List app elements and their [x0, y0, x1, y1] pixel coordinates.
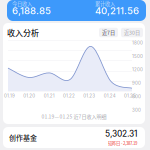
- staticText: 较昨日 -2,387.19: [108, 140, 137, 146]
- staticText: 1200: [132, 67, 143, 72]
- staticText: 5,302.31: [105, 129, 137, 139]
- staticText: 01.19—01.25 近7日收入明细: [41, 113, 106, 120]
- staticText: 01.20: [23, 93, 35, 98]
- staticText: 01.19: [4, 93, 15, 98]
- staticText: 近7日: [102, 29, 115, 36]
- staticText: 今日收入: [12, 0, 32, 7]
- staticText: 01.22: [63, 93, 75, 98]
- staticText: 01.23: [83, 93, 95, 98]
- staticText: 1800: [132, 40, 143, 45]
- staticText: 01.25: [124, 93, 136, 98]
- staticText: 近30日: [124, 29, 140, 36]
- staticText: 40,211.56: [95, 5, 139, 17]
- button[interactable]: 近7日: [99, 28, 118, 37]
- staticText: 收入分析: [7, 27, 39, 38]
- button[interactable]: 创作基金: [3, 127, 145, 148]
- staticText: 01.24: [104, 93, 116, 98]
- button[interactable]: 近30日: [121, 28, 143, 37]
- staticText: 300: [132, 107, 141, 113]
- staticText: 900: [132, 80, 141, 86]
- staticText: 6,188.85: [12, 5, 51, 17]
- staticText: 600: [132, 94, 141, 99]
- staticText: 1500: [132, 53, 143, 59]
- staticText: 累计收入: [95, 0, 115, 7]
- staticText: 创作基金: [9, 132, 37, 142]
- staticText: 01.21: [44, 93, 55, 98]
